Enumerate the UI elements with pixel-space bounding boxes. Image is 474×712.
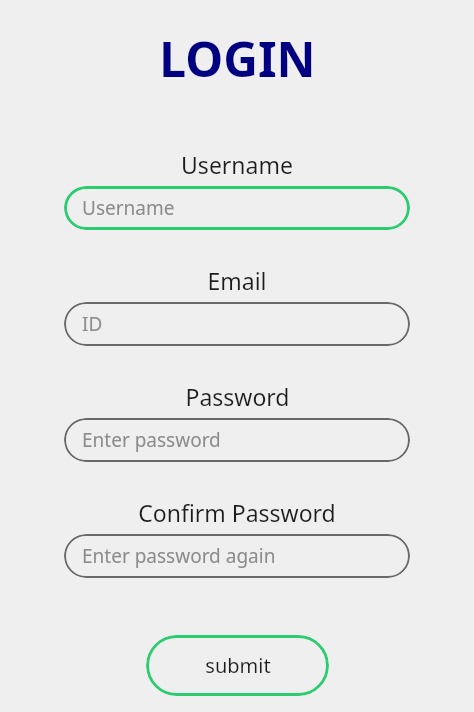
staticText: ID [82, 311, 103, 337]
button[interactable]: ID [64, 302, 410, 346]
staticText: Confirm Password [138, 497, 336, 528]
staticText: Email [207, 265, 267, 296]
staticText: Enter password [82, 427, 221, 453]
button[interactable]: submit [146, 635, 329, 696]
button[interactable]: Enter password [64, 418, 410, 462]
staticText: LOGIN [159, 26, 316, 91]
button[interactable]: Enter password again [64, 534, 410, 578]
staticText: Username [82, 195, 175, 221]
staticText: Enter password again [82, 543, 276, 569]
staticText: Password [185, 381, 290, 412]
staticText: submit [205, 652, 271, 679]
button[interactable]: Username [64, 186, 410, 230]
staticText: Username [181, 149, 293, 180]
